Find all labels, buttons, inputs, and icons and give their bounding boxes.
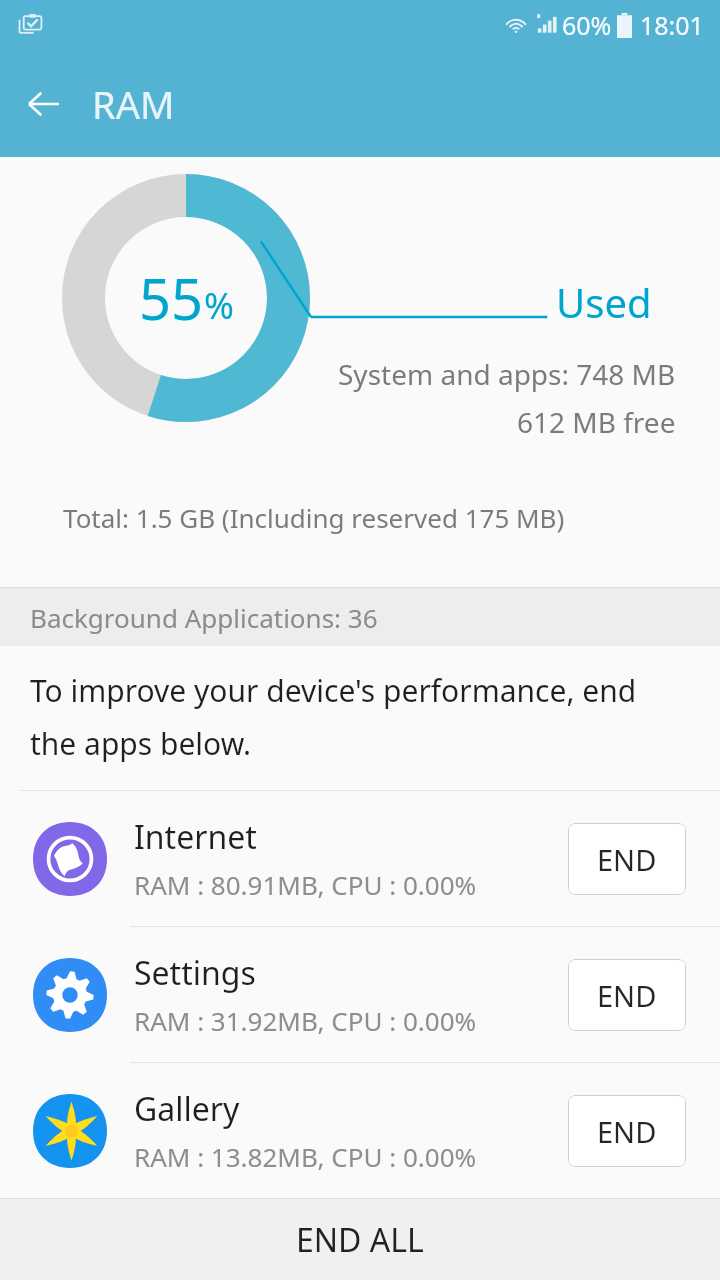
staticText: RAM : 80.91MB, CPU : 0.00% <box>134 867 477 902</box>
staticText: 55 <box>139 260 204 336</box>
button[interactable]: Gallery <box>0 1063 720 1198</box>
button[interactable]: Back <box>14 74 74 134</box>
button[interactable]: Settings <box>0 927 720 1062</box>
staticText: To improve your device's performance, en… <box>30 670 637 711</box>
staticText: Background Applications: 36 <box>30 600 378 635</box>
staticText: END <box>597 1112 657 1151</box>
button[interactable]: END ALL <box>0 1199 720 1280</box>
staticText: RAM : 13.82MB, CPU : 0.00% <box>134 1139 477 1174</box>
staticText: END <box>597 840 657 879</box>
staticText: RAM : 31.92MB, CPU : 0.00% <box>134 1003 477 1038</box>
staticText: Gallery <box>134 1087 240 1131</box>
staticText: END ALL <box>296 1218 424 1262</box>
staticText: 60% <box>562 8 612 42</box>
staticText: % <box>204 281 234 330</box>
button[interactable]: END <box>568 823 686 895</box>
staticText: System and apps: 748 MB <box>338 355 676 393</box>
button[interactable]: END <box>568 1095 686 1167</box>
staticText: Total: 1.5 GB (Including reserved 175 MB… <box>63 500 565 535</box>
staticText: the apps below. <box>30 723 252 764</box>
staticText: 18:01 <box>640 8 704 42</box>
staticText: Internet <box>134 815 257 859</box>
button[interactable]: Internet <box>0 791 720 926</box>
staticText: END <box>597 976 657 1015</box>
staticText: Settings <box>134 951 256 995</box>
button[interactable]: END <box>568 959 686 1031</box>
staticText: Used <box>556 275 652 329</box>
staticText: RAM <box>92 78 175 130</box>
staticText: 612 MB free <box>517 403 676 441</box>
